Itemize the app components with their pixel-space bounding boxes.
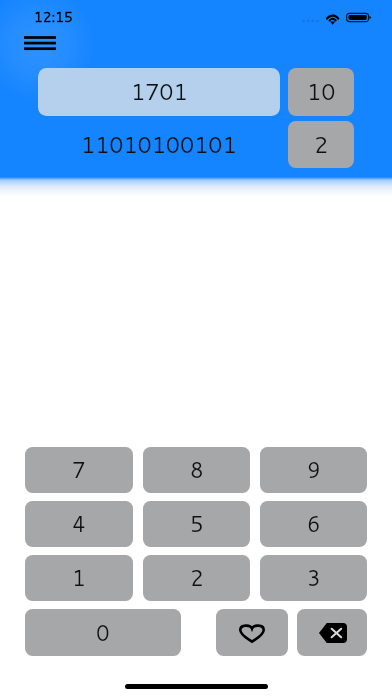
button[interactable]: 4: [25, 501, 133, 547]
button[interactable]: 8: [143, 447, 250, 493]
button[interactable]: 9: [260, 447, 367, 493]
staticText: 0: [96, 618, 110, 648]
button[interactable]: 11010100101: [38, 121, 280, 168]
button[interactable]: 7: [25, 447, 133, 493]
staticText: 4: [72, 509, 86, 539]
staticText: 1701: [131, 76, 188, 108]
button[interactable]: 6: [260, 501, 367, 547]
staticText: 11010100101: [81, 129, 237, 161]
button[interactable]: 2: [288, 121, 354, 168]
button[interactable]: 2: [143, 555, 250, 601]
button[interactable]: Backspace: [297, 609, 367, 656]
staticText: 12:15: [34, 7, 73, 27]
button[interactable]: 5: [143, 501, 250, 547]
staticText: 3: [307, 563, 321, 593]
button[interactable]: 3: [260, 555, 367, 601]
staticText: 1: [72, 563, 86, 593]
button[interactable]: 1: [25, 555, 133, 601]
staticText: 6: [307, 509, 321, 539]
staticText: 9: [307, 455, 321, 485]
staticText: 10: [307, 76, 336, 108]
staticText: 2: [190, 563, 204, 593]
staticText: 8: [190, 455, 204, 485]
staticText: 2: [314, 129, 329, 161]
staticText: 5: [190, 509, 204, 539]
button[interactable]: 0: [25, 609, 181, 656]
button[interactable]: Favorite: [216, 609, 288, 656]
button[interactable]: Menu: [17, 30, 63, 58]
staticText: 7: [72, 455, 86, 485]
button[interactable]: 10: [288, 68, 354, 116]
button[interactable]: 1701: [38, 68, 280, 116]
